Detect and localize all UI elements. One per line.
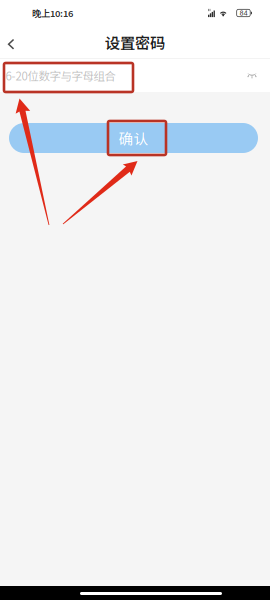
staticText: 晚上10:16 — [32, 6, 73, 20]
staticText: 设置密码 — [105, 31, 165, 53]
staticText: 6-20位数字与字母组合 — [5, 67, 115, 84]
staticText: 84 — [239, 9, 247, 17]
button[interactable]: 确认 — [9, 123, 258, 153]
button[interactable]: Back — [0, 26, 27, 58]
staticText: 确认 — [118, 127, 148, 149]
button[interactable]: Show password — [241, 65, 263, 85]
